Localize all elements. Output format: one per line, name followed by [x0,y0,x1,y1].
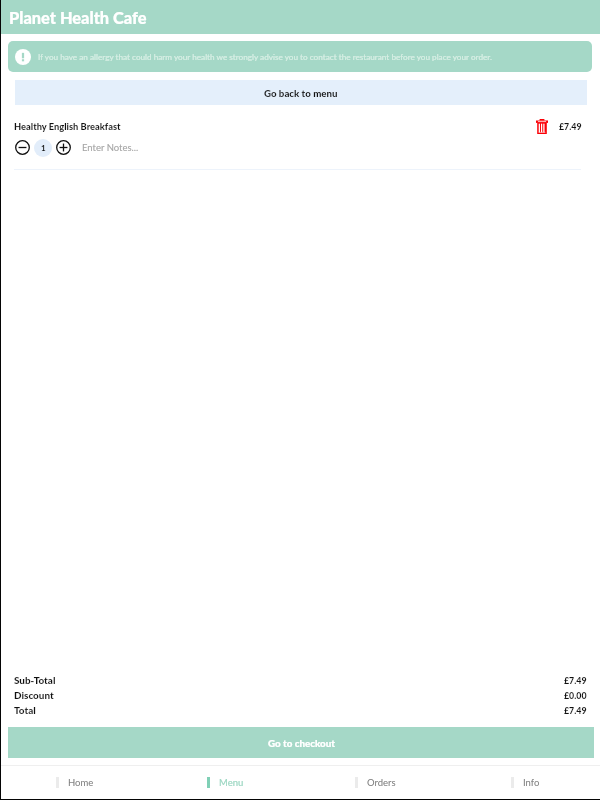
button[interactable]: Go to checkout [8,727,594,758]
staticText: Healthy English Breakfast [14,121,121,132]
staticText: Menu [219,777,244,788]
staticText: Go to checkout [268,737,335,749]
button[interactable]: Decrease quantity [15,140,30,155]
staticText: Orders [367,777,396,788]
staticText: Enter Notes... [82,142,139,153]
staticText: Planet Health Cafe [9,8,147,28]
button[interactable]: Menu [150,767,300,798]
staticText: £7.49 [559,121,582,132]
staticText: Total [14,704,36,716]
staticText: Discount [14,689,54,701]
staticText: Home [68,777,94,788]
staticText: £7.49 [564,675,587,686]
button[interactable]: Go back to menu [15,80,587,105]
staticText: 1 [41,143,46,153]
button[interactable]: Planet Health Cafe [0,0,600,34]
staticText: Sub-Total [14,674,56,686]
button[interactable]: Orders [300,767,450,798]
staticText: £7.49 [564,705,587,716]
button[interactable]: Remove item [536,119,548,134]
button[interactable]: Home [0,767,150,798]
button[interactable]: Info [450,767,600,798]
button[interactable]: If you have an allergy that could harm y… [8,41,592,72]
staticText: If you have an allergy that could harm y… [38,52,492,62]
staticText: £0.00 [564,690,587,701]
staticText: Go back to menu [264,87,338,99]
staticText: Info [523,777,540,788]
button[interactable]: Increase quantity [56,140,71,155]
